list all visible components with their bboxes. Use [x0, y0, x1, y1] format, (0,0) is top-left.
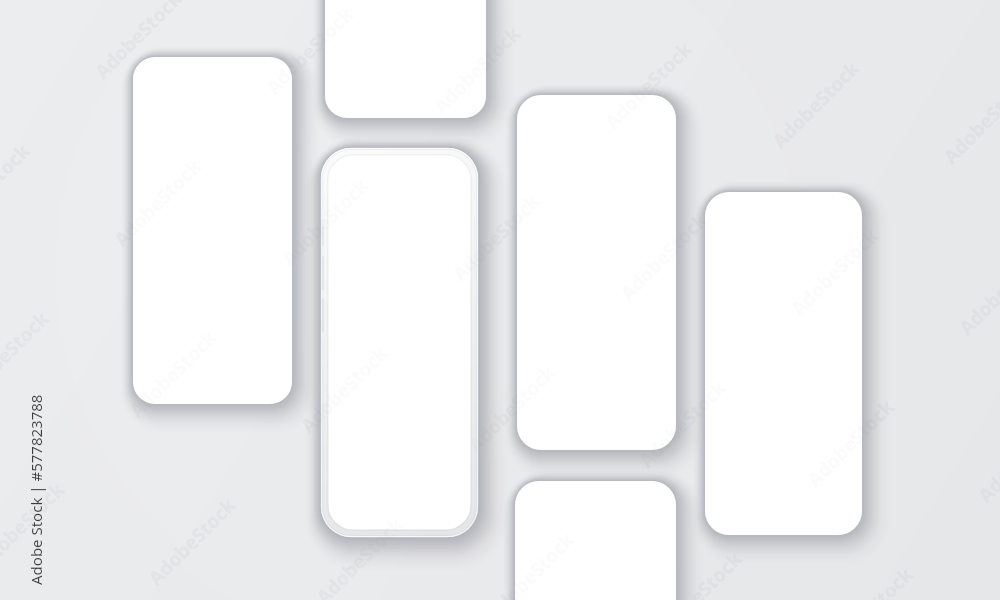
button[interactable]: Phone mockup collection — [0, 0, 1000, 600]
